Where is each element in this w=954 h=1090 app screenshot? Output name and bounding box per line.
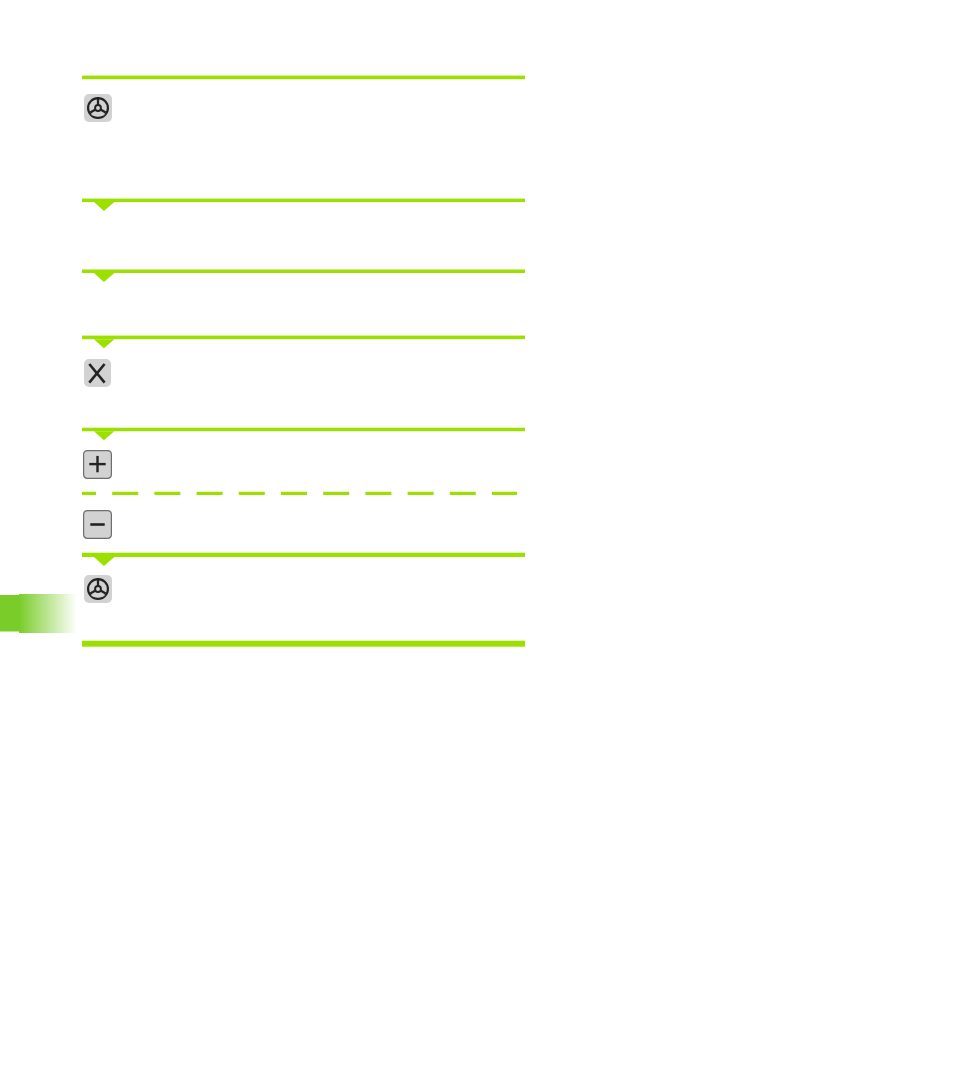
- button[interactable]: Add: [83, 450, 112, 479]
- button[interactable]: Steering wheel: [84, 575, 112, 603]
- button[interactable]: Remove: [83, 510, 112, 539]
- button[interactable]: Steering wheel: [84, 94, 112, 122]
- button[interactable]: Close: [84, 359, 111, 387]
